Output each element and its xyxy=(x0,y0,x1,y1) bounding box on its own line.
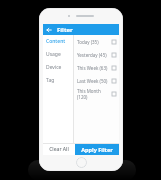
button[interactable]: Content xyxy=(43,35,73,48)
staticText: Usage xyxy=(46,51,61,58)
staticText: Tag xyxy=(46,77,55,84)
staticText: Clear All xyxy=(49,146,69,153)
staticText: Apply Filter xyxy=(81,146,113,153)
staticText: Filter xyxy=(57,26,73,34)
button[interactable]: Clear All xyxy=(43,144,75,155)
button[interactable]: Device xyxy=(43,61,73,74)
button[interactable]: Back xyxy=(43,24,54,35)
staticText: This Month (120) xyxy=(77,88,112,100)
staticText: This Week (63) xyxy=(77,65,112,71)
button[interactable]: Yesterday (45) xyxy=(74,48,119,61)
button[interactable]: This Week (63) xyxy=(74,61,119,74)
staticText: Today (35) xyxy=(77,39,112,45)
staticText: Device xyxy=(46,64,62,71)
staticText: Yesterday (45) xyxy=(77,52,112,58)
staticText: Last Week (50) xyxy=(77,78,112,84)
button[interactable]: Usage xyxy=(43,48,73,61)
button[interactable]: Last Week (50) xyxy=(74,74,119,87)
button[interactable]: Tag xyxy=(43,74,73,87)
button[interactable]: Today (35) xyxy=(74,35,119,48)
button[interactable]: Apply Filter xyxy=(75,144,119,155)
staticText: Content xyxy=(46,38,66,45)
button[interactable]: This Month (120) xyxy=(74,87,119,100)
